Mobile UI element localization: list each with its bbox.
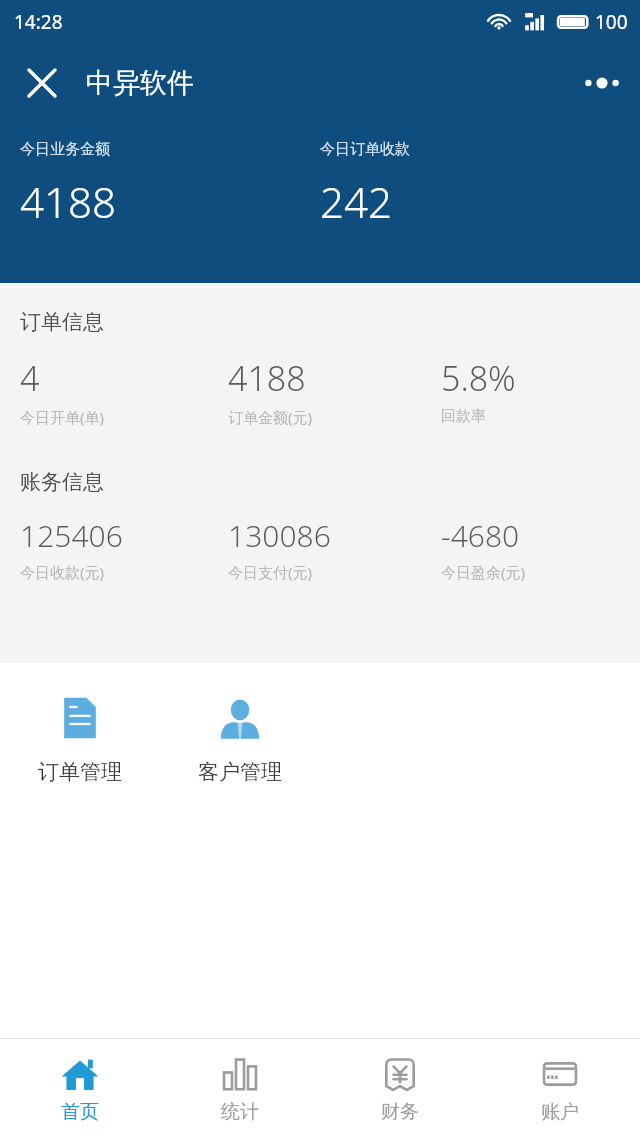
staticText: 4188: [20, 173, 116, 230]
staticText: 订单管理: [38, 759, 122, 785]
staticText: 5.8%: [441, 355, 516, 401]
button[interactable]: More options: [574, 55, 630, 111]
staticText: 100: [595, 9, 628, 35]
staticText: 首页: [61, 1100, 99, 1124]
staticText: 账务信息: [20, 469, 104, 495]
staticText: 130086: [228, 515, 331, 556]
staticText: 中异软件: [86, 66, 194, 100]
button[interactable]: 账户: [480, 1039, 640, 1138]
staticText: 今日支付(元): [228, 562, 313, 582]
staticText: 订单信息: [20, 309, 104, 335]
staticText: 财务: [381, 1100, 419, 1124]
button[interactable]: 客户管理: [160, 685, 320, 791]
staticText: 125406: [20, 515, 123, 556]
staticText: 4: [20, 355, 40, 401]
button[interactable]: 财务: [320, 1039, 480, 1138]
button[interactable]: 首页: [0, 1039, 160, 1138]
staticText: 242: [320, 173, 392, 230]
staticText: 今日订单收款: [320, 140, 410, 159]
staticText: 今日开单(单): [20, 407, 105, 427]
staticText: -4680: [441, 515, 520, 556]
staticText: 4188: [228, 355, 306, 401]
button[interactable]: Close: [14, 55, 70, 111]
staticText: 今日业务金额: [20, 140, 110, 159]
staticText: 回款率: [441, 407, 486, 426]
staticText: 订单金额(元): [228, 407, 313, 427]
staticText: 今日盈余(元): [441, 562, 526, 582]
button[interactable]: 订单管理: [0, 685, 160, 791]
staticText: 14:28: [14, 9, 63, 35]
staticText: 客户管理: [198, 759, 282, 785]
button[interactable]: 统计: [160, 1039, 320, 1138]
staticText: 今日收款(元): [20, 562, 105, 582]
staticText: 统计: [221, 1100, 259, 1124]
staticText: 账户: [541, 1100, 579, 1124]
